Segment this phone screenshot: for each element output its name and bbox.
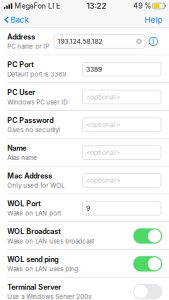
staticText: <optional> <box>86 93 120 101</box>
button[interactable]: Clear text <box>135 38 145 45</box>
staticText: PC User <box>7 88 35 97</box>
staticText: Mac Address <box>7 171 52 180</box>
staticText: <optional> <box>86 121 120 129</box>
button[interactable]: Back <box>0 13 34 27</box>
staticText: WOL send ping <box>7 255 59 264</box>
staticText: Alias name <box>7 154 37 161</box>
staticText: Wake on LAN uses broadcast <box>7 237 94 245</box>
staticText: <optional> <box>86 176 120 184</box>
staticText: MegaFon <box>14 2 45 10</box>
staticText: PC Port <box>7 60 34 69</box>
staticText: 3389 <box>86 65 102 73</box>
staticText: Wake on LAN port <box>7 210 61 217</box>
button[interactable]: Information <box>145 37 169 46</box>
staticText: Back <box>10 15 28 25</box>
button[interactable]: Help <box>138 13 169 27</box>
staticText: PC Password <box>7 116 53 125</box>
staticText: Wake on LAN uses ping <box>7 265 78 273</box>
staticText: Name <box>7 144 26 152</box>
staticText: Address <box>7 32 35 41</box>
staticText: Default port is 3389 <box>7 71 66 78</box>
button[interactable]: WOL Broadcast <box>133 228 169 244</box>
staticText: WOL Broadcast <box>7 227 61 236</box>
staticText: <optional> <box>86 149 120 157</box>
staticText: i <box>152 37 154 46</box>
staticText: Use a Windows Server 200x <box>7 293 91 300</box>
staticText: 9 <box>86 204 90 212</box>
staticText: LTE <box>48 2 60 10</box>
staticText: WOL Port <box>7 199 41 208</box>
staticText: PC name or IP <box>7 43 49 50</box>
staticText: Only used for WOL <box>7 182 64 189</box>
staticText: 13:22 <box>86 1 106 11</box>
staticText: 193.124.58.182 <box>57 37 102 45</box>
staticText: Help <box>144 15 162 25</box>
staticText: 49 % <box>133 2 151 10</box>
staticText: Windows PC user ID <box>7 98 67 106</box>
button[interactable]: WOL send ping <box>133 256 169 271</box>
staticText: Gives no security! <box>7 126 60 134</box>
staticText: Terminal Server <box>7 283 61 291</box>
button[interactable]: Terminal Server <box>133 284 169 299</box>
